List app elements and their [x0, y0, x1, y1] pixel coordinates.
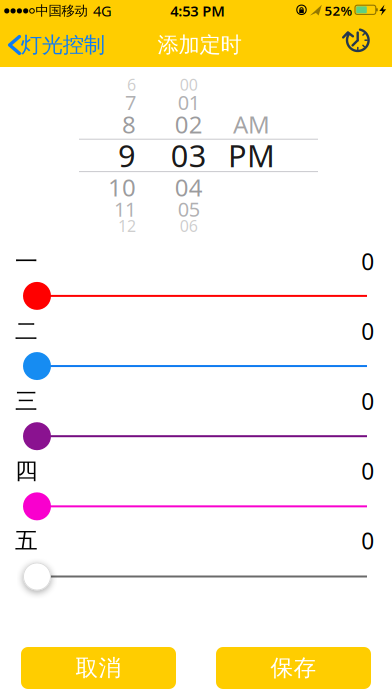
staticText: 00: [180, 74, 198, 95]
staticText: 0: [361, 386, 374, 416]
staticText: 6: [127, 74, 136, 95]
button[interactable]: 定时历史: [337, 23, 377, 59]
staticText: 7: [125, 89, 136, 116]
button[interactable]: Slider 二: [20, 351, 372, 381]
staticText: 保存: [270, 654, 316, 682]
button[interactable]: Slider 三: [20, 421, 372, 451]
button[interactable]: Slider 四: [20, 491, 372, 521]
staticText: 12: [118, 215, 136, 236]
staticText: 05: [178, 196, 200, 222]
staticText: 8: [122, 108, 136, 140]
staticText: 中国移动: [35, 3, 87, 19]
staticText: 0: [361, 246, 374, 276]
staticText: 9: [118, 135, 136, 176]
staticText: 52%: [324, 2, 352, 19]
staticText: 添加定时: [157, 32, 241, 58]
button[interactable]: 灯光控制: [4, 28, 104, 62]
staticText: 五: [15, 527, 38, 555]
button[interactable]: Slider 五: [20, 561, 372, 591]
staticText: AM: [233, 108, 270, 140]
staticText: 02: [175, 108, 203, 140]
staticText: 10: [108, 171, 136, 203]
button[interactable]: Slider 一: [20, 281, 372, 311]
button[interactable]: 取消: [21, 647, 176, 689]
staticText: 0: [361, 456, 374, 486]
staticText: 二: [15, 317, 38, 345]
staticText: 06: [180, 215, 198, 236]
staticText: 01: [178, 89, 200, 116]
staticText: PM: [228, 135, 275, 176]
staticText: 取消: [75, 654, 121, 682]
staticText: 11: [114, 196, 136, 222]
staticText: 三: [15, 387, 38, 415]
staticText: 0: [361, 526, 374, 556]
staticText: 灯光控制: [21, 32, 105, 58]
staticText: 一: [15, 248, 38, 275]
staticText: 4:53 PM: [170, 1, 225, 21]
button[interactable]: 保存: [216, 647, 371, 689]
staticText: 03: [171, 135, 207, 176]
staticText: 4G: [93, 1, 112, 21]
staticText: 0: [361, 316, 374, 346]
staticText: 四: [15, 457, 38, 485]
staticText: 04: [175, 171, 203, 203]
